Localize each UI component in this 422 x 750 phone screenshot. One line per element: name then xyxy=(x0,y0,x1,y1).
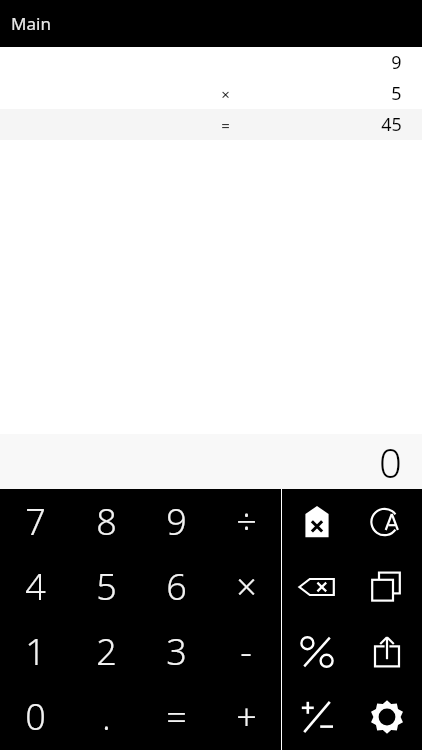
button[interactable]: 2 xyxy=(71,619,141,684)
button[interactable]: 3 xyxy=(141,619,211,684)
staticText: 0 xyxy=(25,692,46,741)
button[interactable]: 7 xyxy=(0,489,71,554)
staticText: . xyxy=(102,694,111,740)
staticText: 9 xyxy=(391,50,402,75)
button[interactable]: 8 xyxy=(71,489,141,554)
button[interactable]: × xyxy=(211,554,281,619)
staticText: 3 xyxy=(166,627,187,676)
button[interactable]: - xyxy=(211,619,281,684)
staticText: 4 xyxy=(25,562,46,611)
button[interactable]: All clear xyxy=(352,489,422,554)
staticText: 2 xyxy=(96,627,117,676)
button[interactable]: 5 xyxy=(71,554,141,619)
button[interactable]: 0 xyxy=(0,434,422,489)
button[interactable]: 6 xyxy=(141,554,211,619)
staticText: Main xyxy=(11,12,51,35)
button[interactable]: Clear entry xyxy=(282,489,352,554)
staticText: 9 xyxy=(166,497,187,546)
staticText: 7 xyxy=(25,497,46,546)
staticText: ÷ xyxy=(236,497,257,546)
button[interactable]: Settings xyxy=(352,684,422,749)
button[interactable]: × xyxy=(0,78,422,109)
staticText: × xyxy=(221,84,230,104)
button[interactable]: Copy xyxy=(352,554,422,619)
staticText: 8 xyxy=(96,497,117,546)
button[interactable]: ÷ xyxy=(211,489,281,554)
button[interactable]: 9 xyxy=(0,47,422,78)
button[interactable]: = xyxy=(141,684,211,749)
button[interactable]: Backspace xyxy=(282,554,352,619)
staticText: 5 xyxy=(391,81,402,106)
staticText: 6 xyxy=(166,562,187,611)
button[interactable]: Percent xyxy=(282,619,352,684)
button[interactable]: Share xyxy=(352,619,422,684)
staticText: - xyxy=(240,627,252,676)
button[interactable]: 4 xyxy=(0,554,71,619)
staticText: = xyxy=(221,115,230,135)
staticText: 5 xyxy=(96,562,117,611)
button[interactable]: + xyxy=(211,684,281,749)
button[interactable]: 1 xyxy=(0,619,71,684)
button[interactable]: . xyxy=(71,684,141,749)
button[interactable]: 0 xyxy=(0,684,71,749)
button[interactable]: = xyxy=(0,109,422,140)
button[interactable]: Plus minus xyxy=(282,684,352,749)
staticText: 45 xyxy=(381,112,402,137)
staticText: + xyxy=(236,692,257,741)
staticText: 1 xyxy=(25,627,46,676)
staticText: × xyxy=(236,562,257,611)
staticText: 0 xyxy=(379,435,402,489)
staticText: = xyxy=(166,692,187,741)
button[interactable]: Main xyxy=(0,0,422,47)
button[interactable]: 9 xyxy=(141,489,211,554)
